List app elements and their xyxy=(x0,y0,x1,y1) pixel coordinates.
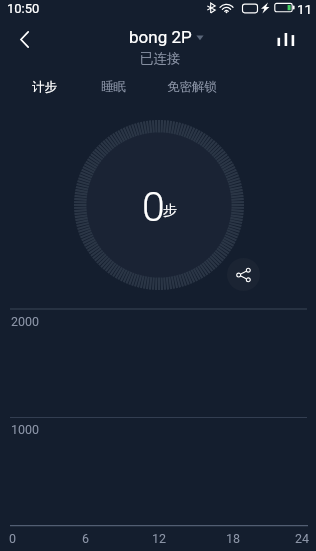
button[interactable]: Share xyxy=(227,258,260,291)
staticText: 1000 xyxy=(11,422,40,437)
staticText: 0 xyxy=(142,183,165,231)
staticText: 12 xyxy=(152,531,167,546)
staticText: 24 xyxy=(295,531,310,546)
staticText: 10:50 xyxy=(7,1,40,16)
staticText: 免密解锁 xyxy=(167,79,217,95)
staticText: 18 xyxy=(226,531,241,546)
button[interactable]: Statistics xyxy=(268,22,304,56)
staticText: 步 xyxy=(163,202,177,220)
staticText: 已连接 xyxy=(140,50,181,67)
staticText: bong 2P xyxy=(129,27,192,47)
staticText: 睡眠 xyxy=(101,79,126,95)
button[interactable]: Back xyxy=(6,22,42,56)
staticText: 计步 xyxy=(32,79,57,95)
staticText: 6 xyxy=(82,531,90,546)
button[interactable]: 免密解锁 xyxy=(167,79,217,95)
button[interactable]: 计步 xyxy=(32,79,57,95)
button[interactable]: 睡眠 xyxy=(101,79,126,95)
staticText: 0 xyxy=(9,531,17,546)
button[interactable]: bong 2P xyxy=(2,26,316,66)
staticText: 11 xyxy=(297,1,313,17)
staticText: 2000 xyxy=(11,314,40,329)
